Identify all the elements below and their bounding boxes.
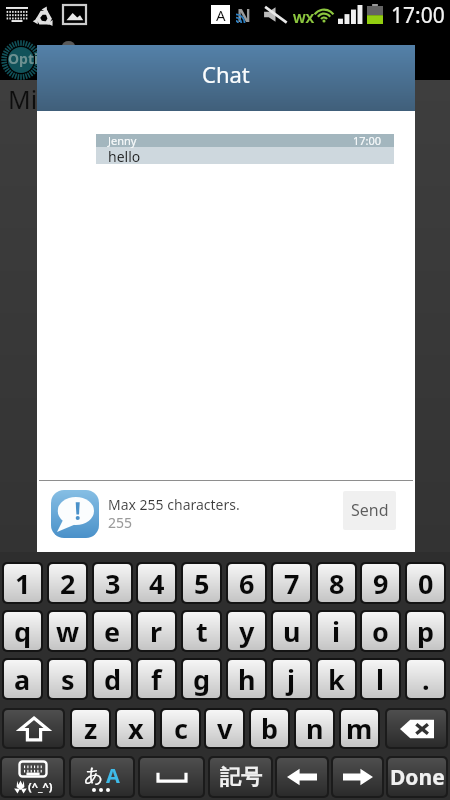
staticText: Send	[351, 499, 389, 521]
staticText: Done	[390, 763, 445, 792]
button[interactable]: b	[251, 710, 288, 747]
button[interactable]: o	[362, 612, 399, 650]
staticText: b	[261, 710, 279, 747]
staticText: d	[104, 661, 122, 698]
staticText: m	[346, 710, 373, 747]
button[interactable]: Done	[388, 758, 446, 796]
button[interactable]: d	[94, 660, 131, 698]
button[interactable]: Change keyboard	[2, 758, 63, 796]
staticText: t	[196, 613, 208, 650]
button[interactable]: 0	[407, 564, 444, 602]
staticText: u	[283, 613, 301, 650]
button[interactable]: Right	[333, 758, 382, 796]
staticText: j	[287, 661, 296, 698]
staticText: s	[61, 661, 75, 698]
staticText: f	[151, 661, 162, 698]
staticText: WX	[293, 9, 315, 27]
staticText: 17:00	[391, 1, 445, 29]
staticText: (^_^)	[28, 779, 53, 794]
button[interactable]: r	[138, 612, 175, 650]
button[interactable]: m	[341, 710, 378, 747]
staticText: 5	[194, 565, 210, 602]
staticText: q	[14, 613, 32, 650]
staticText: 0	[418, 565, 434, 602]
staticText: Optia	[8, 49, 47, 68]
staticText: p	[417, 613, 435, 650]
button[interactable]: Switch input mode	[71, 758, 133, 796]
button[interactable]: 4	[138, 564, 175, 602]
button[interactable]: 2	[49, 564, 86, 602]
button[interactable]: t	[183, 612, 220, 650]
button[interactable]: Shift	[4, 710, 63, 747]
button[interactable]: z	[72, 710, 109, 747]
staticText: r	[150, 613, 163, 650]
button[interactable]: f	[138, 660, 175, 698]
staticText: w	[56, 613, 80, 650]
staticText: x	[128, 710, 144, 747]
staticText: v	[217, 710, 233, 747]
staticText: h	[238, 661, 256, 698]
staticText: i	[332, 613, 341, 650]
button[interactable]: .	[407, 660, 444, 698]
staticText: k	[328, 661, 345, 698]
button[interactable]: Send	[343, 491, 396, 530]
staticText: 2	[60, 565, 76, 602]
button[interactable]: Backspace	[387, 710, 446, 747]
staticText: Max 255 characters.	[108, 495, 240, 514]
staticText: o	[372, 613, 389, 650]
button[interactable]: 1	[4, 564, 41, 602]
button[interactable]: v	[206, 710, 243, 747]
staticText: hello	[108, 147, 141, 166]
button[interactable]: l	[362, 660, 399, 698]
staticText: Jenny	[108, 133, 137, 148]
button[interactable]: e	[94, 612, 131, 650]
staticText: z	[84, 710, 98, 747]
staticText: 3	[105, 565, 121, 602]
staticText: あ	[84, 764, 104, 788]
staticText: A	[216, 5, 226, 24]
button[interactable]: p	[407, 612, 444, 650]
button[interactable]: c	[162, 710, 199, 747]
staticText: y	[239, 613, 255, 650]
staticText: A	[106, 762, 120, 789]
button[interactable]: h	[228, 660, 265, 698]
button[interactable]: a	[4, 660, 41, 698]
staticText: 記号	[220, 764, 262, 790]
button[interactable]: w	[49, 612, 86, 650]
staticText: Chat	[202, 59, 250, 89]
staticText: 7	[284, 565, 300, 602]
staticText: 9	[373, 565, 389, 602]
staticText: N	[237, 4, 251, 27]
staticText: 17:00	[353, 133, 382, 148]
staticText: e	[104, 613, 121, 650]
staticText: 1	[15, 565, 31, 602]
button[interactable]: 8	[318, 564, 355, 602]
button[interactable]: x	[117, 710, 154, 747]
staticText: 8	[329, 565, 345, 602]
button[interactable]: 6	[228, 564, 265, 602]
button[interactable]: Space	[140, 758, 203, 796]
button[interactable]: u	[273, 612, 310, 650]
button[interactable]: g	[183, 660, 220, 698]
button[interactable]: 記号	[210, 758, 271, 796]
button[interactable]: y	[228, 612, 265, 650]
staticText: n	[306, 710, 324, 747]
staticText: l	[376, 661, 385, 698]
button[interactable]: q	[4, 612, 41, 650]
button[interactable]: 3	[94, 564, 131, 602]
staticText: 4	[149, 565, 165, 602]
button[interactable]: n	[296, 710, 333, 747]
button[interactable]: i	[318, 612, 355, 650]
button[interactable]: 9	[362, 564, 399, 602]
button[interactable]: Left	[277, 758, 327, 796]
staticText: 255	[108, 513, 133, 532]
staticText: .	[422, 661, 430, 698]
staticText: g	[193, 661, 211, 698]
button[interactable]: 5	[183, 564, 220, 602]
button[interactable]: k	[318, 660, 355, 698]
staticText: a	[14, 661, 31, 698]
staticText: c	[174, 710, 188, 747]
button[interactable]: j	[273, 660, 310, 698]
button[interactable]: s	[49, 660, 86, 698]
button[interactable]: 7	[273, 564, 310, 602]
